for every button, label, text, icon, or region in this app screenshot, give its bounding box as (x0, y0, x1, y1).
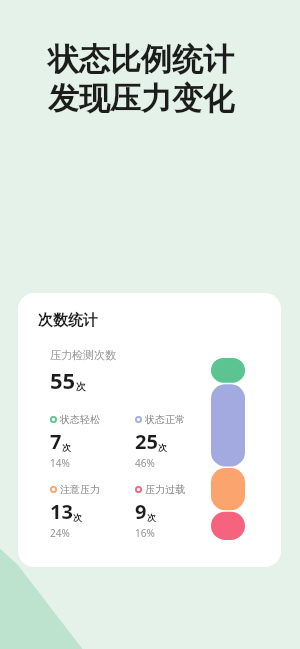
button[interactable]: 注意压力 (50, 483, 135, 540)
staticText: 14% (50, 456, 70, 470)
staticText: 7 (50, 428, 62, 455)
button[interactable]: 次数统计 (18, 293, 281, 567)
staticText: 次 (147, 512, 156, 523)
staticText: 状态比例统计 (48, 40, 234, 79)
staticText: 压力过载 (145, 483, 185, 496)
staticText: 24% (50, 526, 70, 540)
other: 状态比例柱状图 (211, 358, 245, 540)
staticText: 次 (73, 512, 82, 523)
staticText: 9 (135, 498, 147, 525)
staticText: 压力检测次数 (50, 348, 116, 362)
staticText: 次 (76, 380, 86, 393)
button[interactable]: 压力过载 (135, 483, 220, 540)
staticText: 状态轻松 (60, 413, 100, 426)
staticText: 55 (50, 365, 76, 395)
staticText: 46% (135, 456, 155, 470)
staticText: 25 (135, 428, 158, 455)
staticText: 次数统计 (38, 311, 98, 330)
staticText: 13 (50, 498, 73, 525)
staticText: 次 (158, 442, 167, 453)
staticText: 注意压力 (60, 483, 100, 496)
button[interactable]: 状态正常 (135, 413, 220, 470)
button[interactable]: 状态轻松 (50, 413, 135, 470)
staticText: 次 (62, 442, 71, 453)
staticText: 16% (135, 526, 155, 540)
staticText: 发现压力变化 (48, 79, 234, 118)
staticText: 状态正常 (145, 413, 185, 426)
